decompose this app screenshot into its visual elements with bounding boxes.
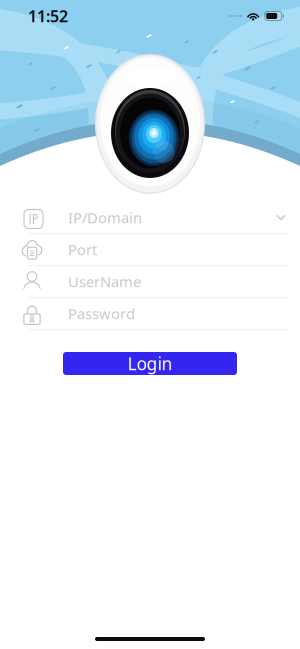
staticText: IP/Domain (68, 208, 142, 227)
button[interactable]: Password (0, 298, 300, 330)
button[interactable]: Login (63, 352, 237, 375)
staticText: Password (68, 304, 135, 323)
button[interactable]: Port (0, 234, 300, 266)
button[interactable]: IP/Domain (0, 202, 300, 234)
staticText: Port (68, 240, 97, 259)
staticText: Login (127, 352, 172, 375)
staticText: 11:52 (28, 5, 68, 27)
staticText: UserName (68, 272, 141, 291)
button[interactable]: UserName (0, 266, 300, 298)
